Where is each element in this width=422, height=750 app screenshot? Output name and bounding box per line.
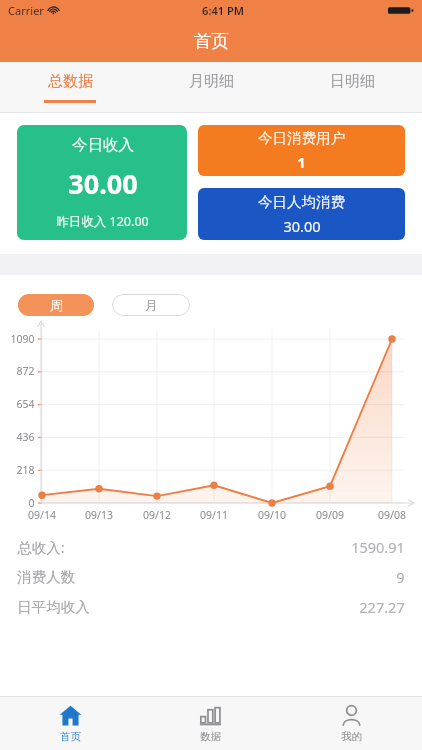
staticText: 1090: [10, 332, 35, 346]
staticText: 09/14: [28, 508, 56, 522]
staticText: 昨日收入 120.00: [56, 213, 149, 230]
button[interactable]: 数据: [140, 697, 281, 750]
staticText: 0: [28, 496, 35, 510]
other: 我的: [340, 704, 363, 727]
staticText: 09/12: [143, 508, 171, 522]
staticText: 1590.91: [351, 537, 405, 557]
staticText: 周: [50, 297, 63, 313]
staticText: 6:41 PM: [202, 3, 244, 18]
button[interactable]: 首页: [0, 697, 140, 750]
staticText: 月明细: [189, 72, 234, 91]
staticText: 总数据: [48, 72, 93, 91]
staticText: 数据: [200, 730, 221, 743]
staticText: 首页: [194, 30, 229, 52]
staticText: 09/08: [378, 508, 406, 522]
staticText: 消费人数: [17, 568, 75, 586]
button[interactable]: 总收入:: [17, 532, 405, 562]
staticText: 今日消费用户: [258, 129, 345, 147]
button[interactable]: 日明细: [281, 62, 422, 113]
other: 数据: [199, 704, 222, 727]
button[interactable]: 日平均收入: [17, 592, 405, 622]
button[interactable]: 今日人均消费: [198, 188, 405, 240]
staticText: 总收入:: [17, 537, 65, 557]
staticText: 日平均收入: [17, 598, 90, 616]
button[interactable]: 总数据: [0, 62, 140, 113]
staticText: 654: [16, 397, 35, 411]
button[interactable]: 今日消费用户: [198, 125, 405, 176]
staticText: 今日人均消费: [258, 193, 345, 211]
staticText: 30.00: [68, 165, 138, 202]
staticText: 09/13: [85, 508, 113, 522]
staticText: 09/09: [316, 508, 344, 522]
button[interactable]: 今日收入: [17, 125, 187, 240]
button[interactable]: 消费人数: [17, 562, 405, 592]
staticText: 872: [16, 364, 35, 378]
button[interactable]: 我的: [281, 697, 422, 750]
staticText: 9: [396, 567, 405, 587]
staticText: 436: [16, 430, 35, 444]
staticText: 227.27: [359, 597, 405, 617]
staticText: 1: [297, 152, 306, 172]
staticText: 日明细: [330, 72, 375, 91]
staticText: 218: [16, 463, 35, 477]
staticText: Carrier: [8, 3, 44, 18]
button[interactable]: 周: [18, 294, 94, 316]
staticText: 30.00: [283, 216, 321, 236]
staticText: 09/10: [258, 508, 286, 522]
staticText: 09/11: [200, 508, 228, 522]
button[interactable]: 月明细: [140, 62, 281, 113]
staticText: 首页: [60, 730, 81, 743]
staticText: 月: [145, 297, 158, 313]
other: 首页: [59, 704, 82, 727]
staticText: 我的: [341, 730, 362, 743]
button[interactable]: 月: [112, 294, 190, 316]
staticText: 今日收入: [72, 135, 134, 155]
